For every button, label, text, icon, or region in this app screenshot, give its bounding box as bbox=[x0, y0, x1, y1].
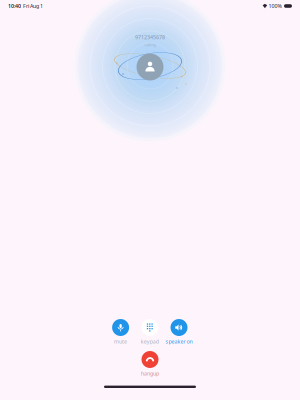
staticText: calling bbox=[144, 42, 155, 47]
staticText: speaker on bbox=[165, 338, 192, 345]
button[interactable]: hangup bbox=[135, 351, 165, 368]
staticText: hangup bbox=[141, 370, 159, 377]
staticText: 10:40 bbox=[8, 2, 21, 10]
staticText: keypad bbox=[141, 338, 159, 345]
staticText: mute bbox=[114, 338, 127, 345]
staticText: 100% bbox=[269, 2, 282, 10]
button[interactable]: speaker on bbox=[164, 319, 194, 336]
button[interactable]: keypad bbox=[135, 319, 164, 336]
staticText: Fri Aug 1 bbox=[21, 2, 43, 10]
button[interactable]: mute bbox=[106, 319, 135, 336]
staticText: 9712345678 bbox=[135, 34, 165, 41]
